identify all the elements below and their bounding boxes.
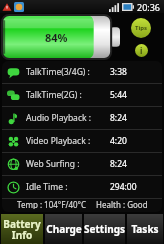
staticText: Video Playback : [26, 135, 91, 147]
staticText: TalkTime(2G) : [26, 89, 82, 101]
button[interactable]: Web Surfing : [2, 153, 162, 175]
staticText: 8:24 [110, 158, 162, 170]
button[interactable]: Audio Playback : [2, 107, 162, 129]
staticText: TalkTime(3/4G) : [26, 66, 90, 78]
button[interactable]: Idle Time : [2, 176, 162, 198]
staticText: 294:00 [110, 181, 162, 193]
button[interactable]: Tasks [127, 214, 163, 244]
staticText: Charge [46, 222, 82, 236]
button[interactable]: Charge [45, 214, 82, 244]
staticText: 8:24 [110, 112, 162, 124]
staticText: Tasks [131, 222, 159, 236]
staticText: Battery Info [3, 217, 41, 242]
staticText: 20:36 [137, 1, 161, 13]
button[interactable]: Tips [131, 18, 151, 38]
button[interactable]: Settings [84, 214, 125, 244]
staticText: 5:44 [110, 89, 162, 101]
staticText: Tips [135, 24, 148, 32]
staticText: Web Surfing : [26, 158, 80, 170]
staticText: 3:38 [110, 66, 162, 78]
staticText: Temp : 104°F/40°C [17, 199, 87, 209]
staticText: Audio Playback : [26, 112, 92, 124]
staticText: Settings [84, 222, 125, 236]
staticText: 84% [45, 30, 68, 45]
button[interactable]: TalkTime(2G) : [2, 84, 162, 106]
staticText: i [140, 45, 143, 56]
staticText: 4:20 [110, 135, 162, 147]
button[interactable]: Info [135, 44, 148, 57]
staticText: Idle Time : [26, 181, 68, 193]
button[interactable]: TalkTime(3/4G) : [2, 61, 162, 83]
button[interactable]: Video Playback : [2, 130, 162, 152]
staticText: Health : Good [96, 199, 148, 209]
button[interactable]: Battery Info [1, 214, 43, 244]
